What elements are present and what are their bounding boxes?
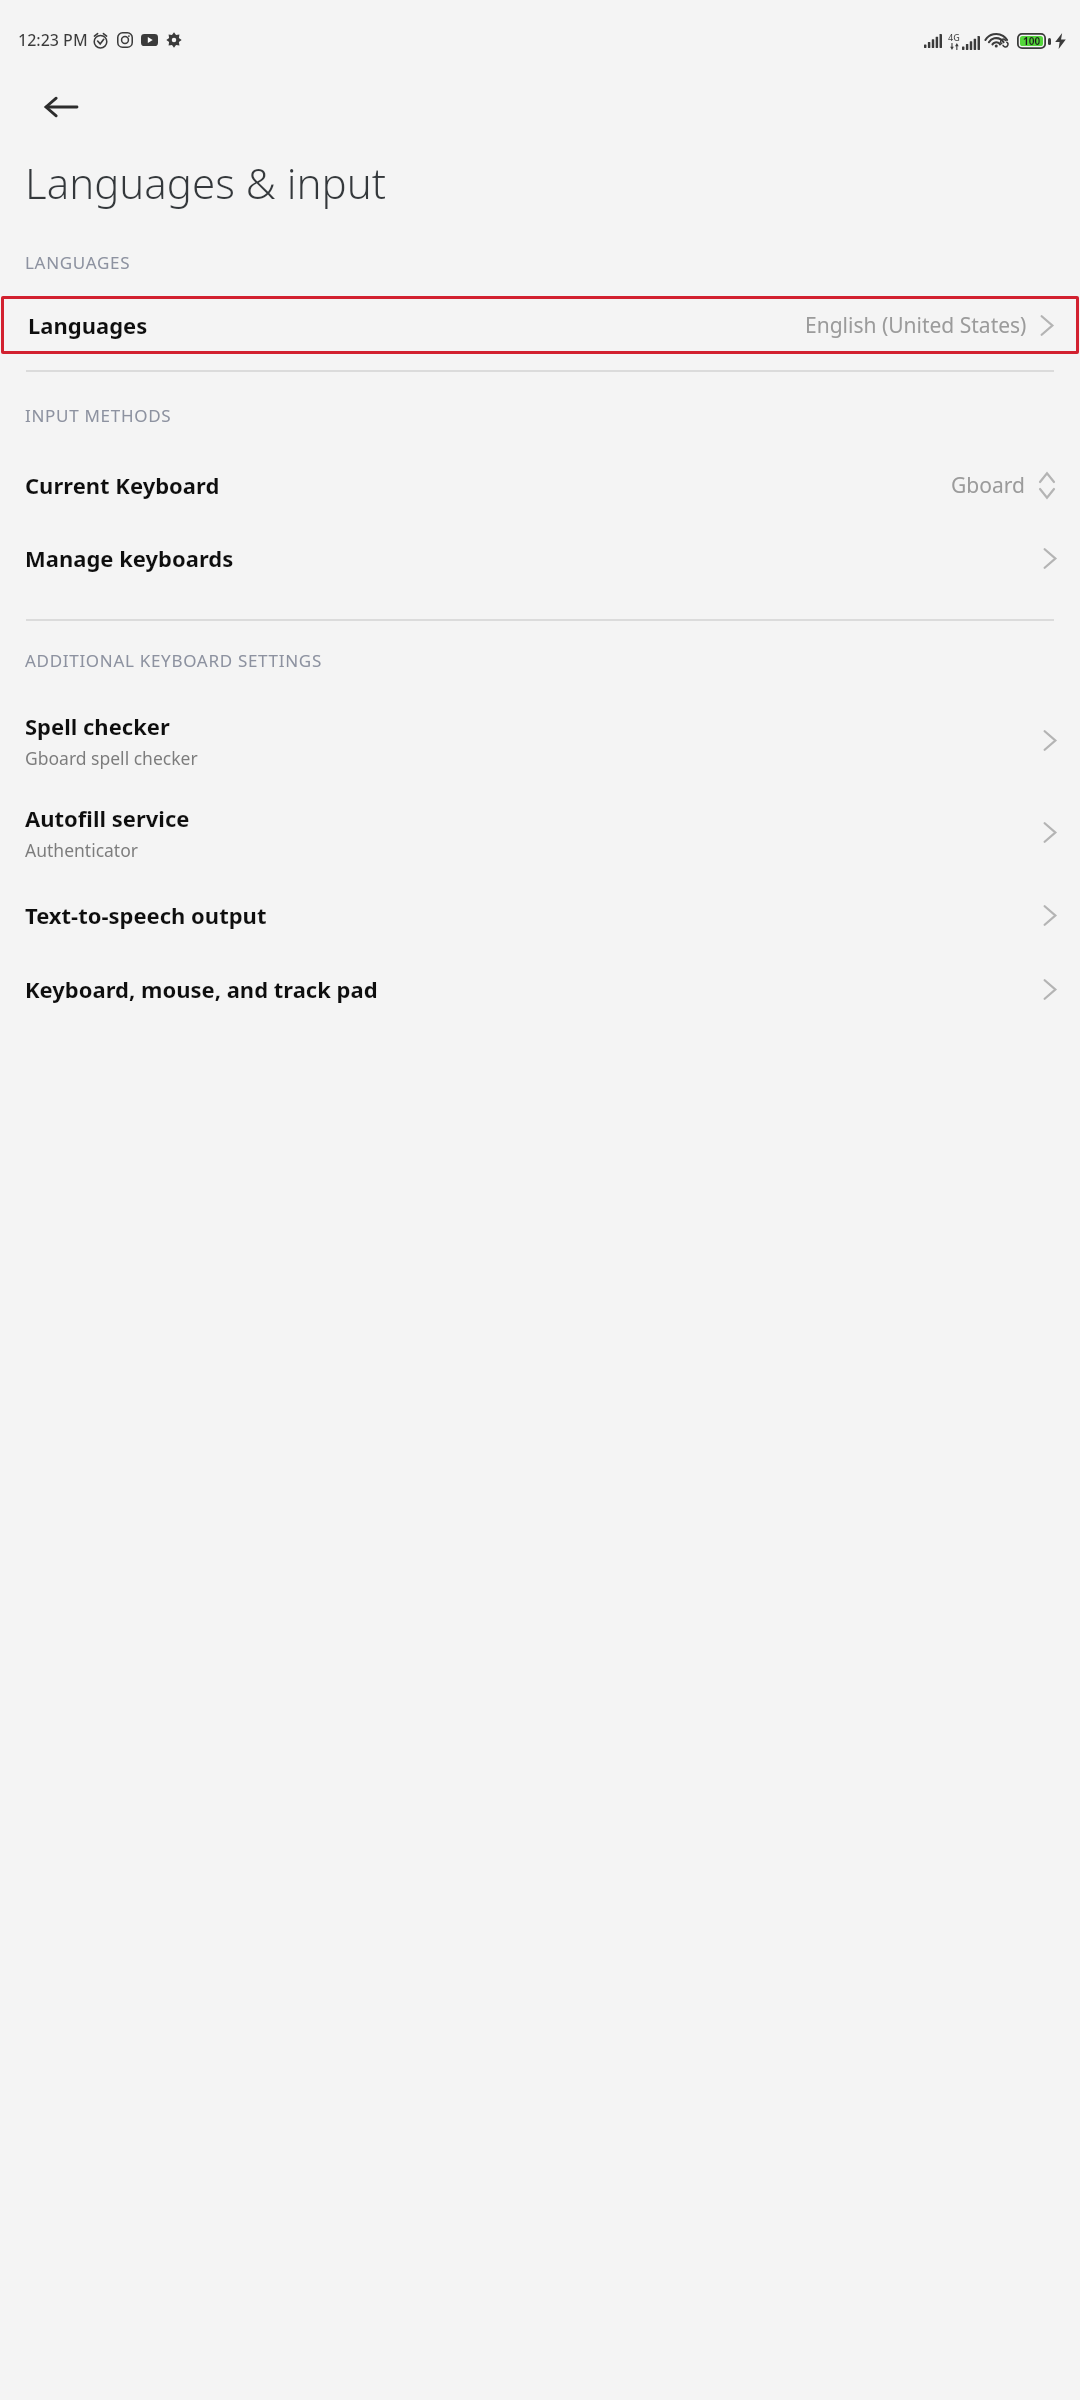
staticText: Gboard spell checker <box>25 746 198 770</box>
staticText: LANGUAGES <box>25 251 131 274</box>
staticText: INPUT METHODS <box>25 404 172 427</box>
staticText: 100 <box>1023 34 1041 48</box>
staticText: Manage keyboards <box>25 543 234 573</box>
staticText: Gboard <box>951 471 1025 500</box>
staticText: Spell checker <box>25 711 170 741</box>
staticText: 12:23 PM <box>18 29 88 51</box>
staticText: Autofill service <box>25 803 190 833</box>
button[interactable]: Manage keyboards <box>0 521 1080 595</box>
button[interactable]: Autofill service <box>0 786 1080 878</box>
button[interactable]: Current Keyboard <box>0 449 1080 521</box>
button[interactable]: Text-to-speech output <box>0 878 1080 952</box>
button[interactable]: Languages <box>4 299 1076 351</box>
staticText: Languages <box>28 310 148 340</box>
staticText: Languages & input <box>25 154 386 211</box>
staticText: ADDITIONAL KEYBOARD SETTINGS <box>25 649 322 672</box>
button[interactable]: Keyboard, mouse, and track pad <box>0 952 1080 1026</box>
button[interactable]: Back <box>34 80 88 134</box>
staticText: Text-to-speech output <box>25 900 267 930</box>
staticText: Authenticator <box>25 838 138 862</box>
staticText: Keyboard, mouse, and track pad <box>25 974 378 1004</box>
staticText: English (United States) <box>805 311 1027 340</box>
button[interactable]: Spell checker <box>0 694 1080 786</box>
staticText: Current Keyboard <box>25 470 220 500</box>
staticText: 4G <box>948 31 960 43</box>
